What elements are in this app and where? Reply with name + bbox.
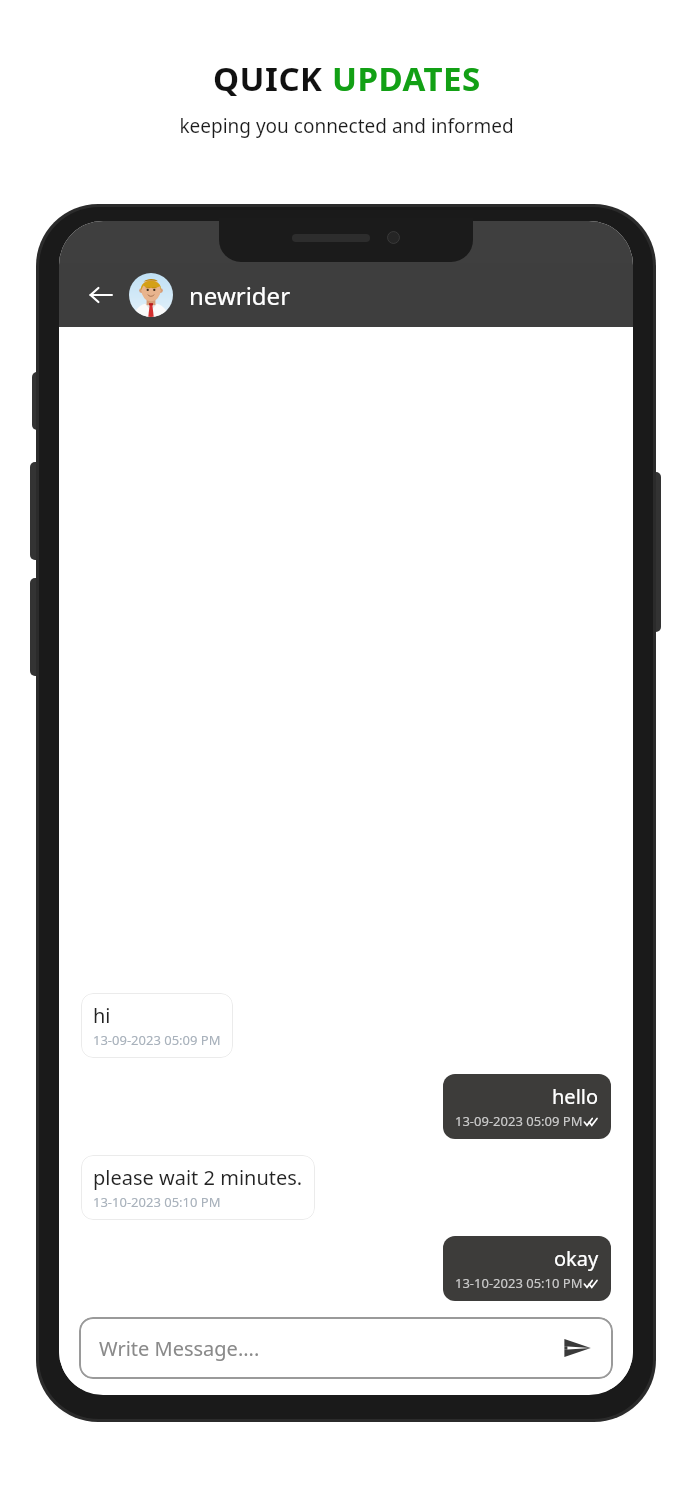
- staticText: hi: [93, 1002, 111, 1029]
- staticText: please wait 2 minutes.: [93, 1164, 303, 1191]
- staticText: Write Message....: [99, 1335, 557, 1362]
- button[interactable]: hello: [443, 1074, 611, 1139]
- staticText: 13-09-2023 05:09 PM: [455, 1112, 583, 1130]
- staticText: newrider: [189, 279, 291, 312]
- button[interactable]: hi: [81, 993, 233, 1058]
- staticText: QUICK: [213, 56, 332, 101]
- staticText: 13-10-2023 05:10 PM: [93, 1193, 221, 1211]
- staticText: keeping you connected and informed: [179, 113, 514, 139]
- button[interactable]: Write Message....: [79, 1317, 613, 1379]
- staticText: 13-10-2023 05:10 PM: [455, 1274, 583, 1292]
- button[interactable]: Back: [81, 275, 121, 315]
- staticText: 13-09-2023 05:09 PM: [93, 1031, 221, 1049]
- button[interactable]: please wait 2 minutes.: [81, 1155, 315, 1220]
- staticText: UPDATES: [332, 56, 481, 101]
- staticText: okay: [554, 1245, 599, 1272]
- button[interactable]: okay: [443, 1236, 611, 1301]
- button[interactable]: Send: [557, 1328, 597, 1368]
- staticText: hello: [552, 1083, 599, 1110]
